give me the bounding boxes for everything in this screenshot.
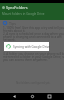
button[interactable]: Home xyxy=(29,93,36,100)
staticText: 3. A folder you choose on your phone wil… xyxy=(3,52,64,56)
staticText: 2. A sync is scheduled once a day when y… xyxy=(3,32,64,36)
staticText: Mount folders in Google Drive xyxy=(2,12,45,16)
staticText: Tips xyxy=(9,21,16,26)
staticText: network. xyxy=(3,38,16,42)
staticText: SyncFolders xyxy=(6,5,28,10)
staticText: friends about it. xyxy=(3,29,26,33)
staticText: Syncing with Google Drive xyxy=(13,45,50,49)
staticText: phone is charging and connected to a wif… xyxy=(3,35,62,39)
staticText: No folders configured yet. xyxy=(16,81,51,85)
button[interactable]: Back xyxy=(11,93,18,100)
staticText: 1. 100% free! Give this app a try and te… xyxy=(3,26,64,30)
staticText: mirrored to a folder in your Google Driv… xyxy=(3,55,64,59)
button[interactable]: Recents xyxy=(46,93,53,100)
button[interactable]: SyncFolders xyxy=(0,3,64,20)
staticText: you can access them anywhere. xyxy=(3,58,48,62)
